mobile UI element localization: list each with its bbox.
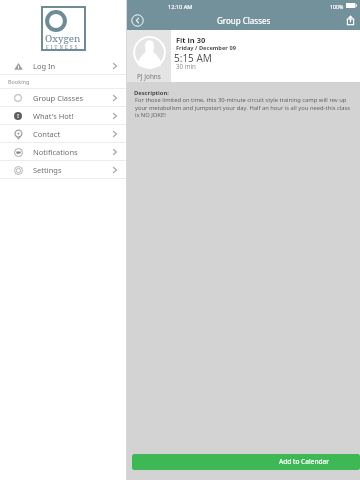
staticText: Notifications	[33, 147, 78, 157]
button[interactable]: What's Hot!	[0, 107, 126, 124]
staticText: 5:15 AM	[174, 51, 212, 65]
staticText: F I T N E S S	[46, 44, 78, 50]
staticText: 12:10 AM	[168, 3, 193, 11]
staticText: Settings	[33, 165, 62, 175]
staticText: Fit in 30	[176, 35, 206, 45]
button[interactable]: Log In	[0, 57, 126, 74]
button[interactable]: Group Classes	[0, 89, 126, 106]
button[interactable]: Settings	[0, 161, 126, 178]
staticText: PJ Johns	[137, 72, 161, 81]
staticText: Friday / December 09	[176, 44, 236, 52]
staticText: Contact	[33, 129, 61, 139]
staticText: Booking	[8, 78, 30, 85]
staticText: 100%	[330, 3, 344, 10]
staticText: 30 min	[176, 62, 196, 70]
staticText: For those limited on time, this 30-minut…	[135, 96, 352, 118]
staticText: Group Classes	[33, 93, 84, 103]
staticText: Add to Calendar	[279, 457, 329, 466]
staticText: Group Classes	[217, 15, 271, 26]
staticText: Log In	[33, 61, 56, 71]
button[interactable]: Share	[342, 12, 358, 28]
staticText: Oxygen	[45, 32, 81, 45]
button[interactable]: Add to Calendar	[132, 454, 360, 470]
button[interactable]: Back	[129, 12, 145, 28]
staticText: Description:	[134, 89, 169, 97]
button[interactable]: Notifications	[0, 143, 126, 160]
button[interactable]: Contact	[0, 125, 126, 142]
staticText: What's Hot!	[33, 111, 74, 121]
